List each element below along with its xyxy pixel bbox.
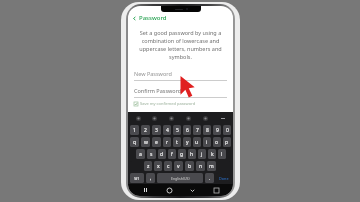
button[interactable]: Confirm Password [134,87,227,98]
staticText: q [133,139,137,146]
staticText: m [209,163,214,170]
button[interactable]: Toolbar 4 [197,112,214,124]
staticText: k [211,151,214,158]
button[interactable]: w [141,137,150,147]
button[interactable]: q [130,137,139,147]
staticText: v [177,163,180,170]
button[interactable]: h [188,149,196,159]
button[interactable]: Keyboard [210,184,222,196]
staticText: 3 [155,127,158,134]
button[interactable]: y [183,137,191,147]
staticText: i [206,139,208,146]
button[interactable]: 9 [213,125,221,135]
button[interactable]: c [164,161,172,171]
button[interactable]: 0 [223,125,231,135]
button[interactable]: Toolbar 0 [130,112,146,124]
staticText: 9 [216,127,219,134]
button[interactable]: 2 [141,125,150,135]
staticText: o [215,139,219,146]
button[interactable]: s [147,149,156,159]
button[interactable]: . [205,173,214,183]
staticText: 7 [196,127,199,134]
staticText: New Password [134,70,172,77]
button[interactable]: 8 [203,125,211,135]
button[interactable]: x [154,161,162,171]
button[interactable]: Home [163,184,175,196]
staticText: h [190,151,194,158]
button[interactable]: 1 [130,125,139,135]
staticText: g [180,151,184,158]
button[interactable]: g [178,149,186,159]
staticText: n [199,163,203,170]
button[interactable]: e [152,137,161,147]
staticText: 6 [186,127,189,134]
staticText: . [209,175,211,182]
staticText: s [150,151,153,158]
button[interactable]: New Password [134,70,227,81]
button[interactable]: 5 [173,125,181,135]
button[interactable]: n [196,161,205,171]
button[interactable]: Save my confirmed password [134,101,227,106]
staticText: d [160,151,164,158]
staticText: c [167,163,170,170]
button[interactable]: k [208,149,216,159]
staticText: y [186,139,189,146]
button[interactable]: i [203,137,211,147]
button[interactable]: Toolbar 1 [146,112,163,124]
button[interactable]: z [144,161,152,171]
button[interactable]: Toolbar 2 [163,112,180,124]
staticText: 2 [144,127,147,134]
button[interactable]: t [173,137,181,147]
button[interactable]: 4 [163,125,171,135]
button[interactable]: f [168,149,176,159]
button[interactable]: Done [216,173,231,183]
button[interactable]: j [198,149,206,159]
staticText: 8 [206,127,209,134]
button[interactable]: English(US) [157,173,203,183]
staticText: e [155,139,158,146]
staticText: b [188,163,192,170]
button[interactable]: m [207,161,216,171]
staticText: Done [219,176,229,181]
staticText: t [176,139,178,146]
button[interactable]: 6 [183,125,191,135]
staticText: Save my confirmed password [140,101,196,106]
button[interactable]: d [158,149,166,159]
button[interactable]: , [146,173,155,183]
button[interactable]: More [214,112,231,124]
staticText: l [221,151,223,158]
button[interactable]: b [185,161,194,171]
staticText: 5 [176,127,179,134]
button[interactable]: p [223,137,231,147]
button[interactable]: 7 [193,125,201,135]
other: Back [132,16,137,21]
staticText: 4 [166,127,169,134]
staticText: u [195,139,199,146]
staticText: x [157,163,160,170]
button[interactable]: u [193,137,201,147]
staticText: p [225,139,229,146]
button[interactable]: v [174,161,183,171]
button[interactable]: l [218,149,226,159]
staticText: Set a good password by using a combinati… [137,29,224,61]
staticText: a [139,151,142,158]
staticText: 1 [133,127,136,134]
button[interactable]: Toolbar 3 [180,112,197,124]
staticText: !#1 [134,176,140,181]
button[interactable]: Recents [139,184,151,196]
button[interactable]: 3 [152,125,161,135]
button[interactable]: o [213,137,221,147]
staticText: w [144,139,148,146]
staticText: z [147,163,150,170]
button[interactable]: r [163,137,171,147]
staticText: English(US) [171,176,190,181]
staticText: Password [139,14,167,22]
button[interactable]: a [136,149,145,159]
staticText: , [150,175,152,182]
staticText: 0 [226,127,229,134]
button[interactable]: !#1 [130,173,144,183]
button[interactable]: Back [186,184,198,196]
button[interactable]: Back [128,13,233,23]
